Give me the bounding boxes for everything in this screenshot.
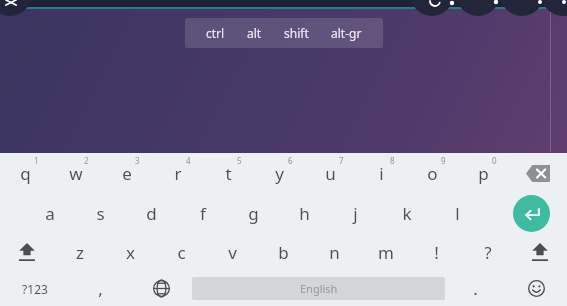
button[interactable]: ? [462,233,513,271]
staticText: 5 [237,155,242,166]
button[interactable]: ! [411,233,462,271]
button[interactable]: ?123 [0,271,70,306]
staticText: m [378,241,394,264]
button[interactable]: 8 [356,153,407,193]
staticText: ? [484,241,492,264]
staticText: f [200,202,206,225]
button[interactable]: Shift [0,233,54,271]
button[interactable]: 5 [203,153,254,193]
button[interactable]: l [432,193,483,233]
staticText: n [329,241,340,264]
staticText: ?123 [22,281,48,297]
staticText: . [473,277,478,300]
button[interactable]: . [445,271,506,306]
staticText: b [278,241,289,264]
staticText: e [122,162,132,185]
button[interactable]: ctrl [195,23,236,43]
staticText: 0 [492,155,497,166]
button[interactable]: x [105,233,156,271]
staticText: v [228,241,237,264]
button[interactable]: English [192,277,445,300]
button[interactable]: 0 [458,153,509,193]
staticText: i [379,162,384,185]
button[interactable]: alt-gr [320,23,373,43]
staticText: d [146,202,157,225]
button[interactable]: 4 [152,153,203,193]
button[interactable]: s [75,193,126,233]
staticText: 9 [441,155,446,166]
button[interactable]: n [309,233,360,271]
staticText: shift [284,25,309,41]
button[interactable]: g [228,193,279,233]
staticText: 4 [186,155,191,166]
staticText: g [248,202,259,225]
staticText: 6 [288,155,293,166]
button[interactable]: m [360,233,411,271]
staticText: o [427,162,438,185]
button[interactable]: 7 [305,153,356,193]
button[interactable]: Backspace [509,153,567,193]
staticText: 3 [135,155,140,166]
button[interactable]: Enter [496,193,567,233]
button[interactable]: k [381,193,432,233]
staticText: l [455,202,460,225]
staticText: y [275,162,284,185]
button[interactable]: d [126,193,177,233]
button[interactable]: a [24,193,75,233]
button[interactable]: 6 [254,153,305,193]
button[interactable]: c [156,233,207,271]
button[interactable]: f [177,193,228,233]
staticText: 2 [84,155,89,166]
staticText: ! [434,241,439,264]
staticText: c [177,241,186,264]
staticText: k [402,202,412,225]
staticText: 1 [34,155,39,166]
button[interactable]: Change language [131,271,192,306]
staticText: 8 [390,155,395,166]
button[interactable]: Emoji [506,271,567,306]
staticText: w [69,162,83,185]
staticText: s [96,202,105,225]
button[interactable]: shift [273,23,320,43]
button[interactable]: alt [236,23,273,43]
staticText: q [20,162,31,185]
button[interactable]: 9 [407,153,458,193]
button[interactable]: 1 [0,153,50,193]
button[interactable]: Shift [513,233,567,271]
staticText: z [76,241,84,264]
staticText: h [299,202,310,225]
staticText: ctrl [206,25,225,41]
staticText: x [126,241,135,264]
staticText: alt-gr [331,25,362,41]
staticText: English [300,281,338,296]
button[interactable]: b [258,233,309,271]
staticText: a [45,202,55,225]
button[interactable]: , [70,271,131,306]
staticText: alt [247,25,262,41]
button[interactable]: 3 [101,153,152,193]
staticText: j [353,202,358,225]
staticText: p [478,162,489,185]
staticText: t [225,162,232,185]
staticText: r [174,162,182,185]
staticText: u [325,162,336,185]
button[interactable]: z [54,233,105,271]
button[interactable]: v [207,233,258,271]
staticText: 7 [339,155,344,166]
button[interactable]: h [279,193,330,233]
staticText: , [98,277,103,300]
button[interactable]: j [330,193,381,233]
button[interactable]: 2 [50,153,101,193]
